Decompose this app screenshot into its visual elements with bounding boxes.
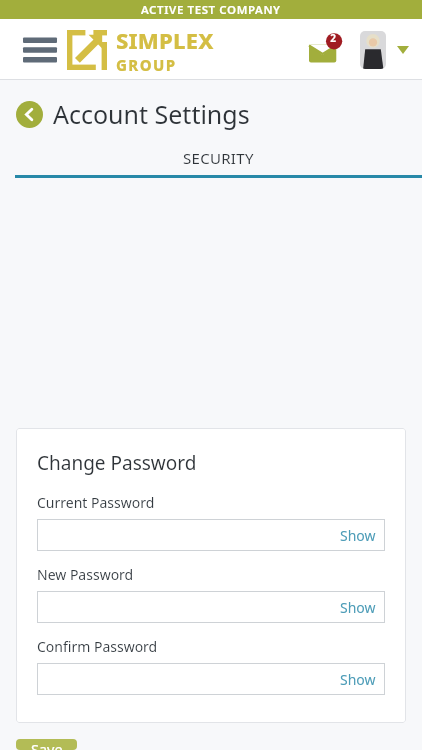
button[interactable]: Messages, 2 unread — [308, 27, 354, 73]
staticText: New Password — [37, 565, 134, 584]
button[interactable]: Show — [37, 663, 385, 695]
button[interactable]: SECURITY — [15, 148, 422, 178]
button[interactable]: Back — [16, 97, 422, 131]
button[interactable]: Menu — [22, 35, 58, 65]
button[interactable]: Show — [340, 598, 376, 617]
button[interactable]: Profile — [360, 31, 386, 69]
staticText: Show — [340, 670, 376, 689]
staticText: Show — [340, 526, 376, 545]
button[interactable]: Show — [340, 670, 376, 689]
staticText: SIMPLEX — [116, 25, 214, 55]
staticText: 2 — [330, 31, 336, 45]
button[interactable]: Simplex Group home — [64, 27, 110, 73]
staticText: ACTIVE TEST COMPANY — [141, 2, 281, 18]
staticText: Change Password — [37, 450, 197, 476]
button[interactable]: Show — [340, 526, 376, 545]
staticText: Account Settings — [53, 97, 250, 131]
staticText: Save — [31, 739, 63, 750]
staticText: Show — [340, 598, 376, 617]
staticText: Current Password — [37, 493, 155, 512]
other: Back — [16, 101, 43, 128]
staticText: Confirm Password — [37, 637, 158, 656]
button[interactable]: Account menu — [392, 31, 414, 69]
button[interactable]: Show — [37, 591, 385, 623]
button[interactable]: Show — [37, 519, 385, 551]
staticText: SECURITY — [183, 148, 254, 168]
staticText: GROUP — [116, 55, 177, 75]
button[interactable]: Save — [16, 739, 77, 750]
